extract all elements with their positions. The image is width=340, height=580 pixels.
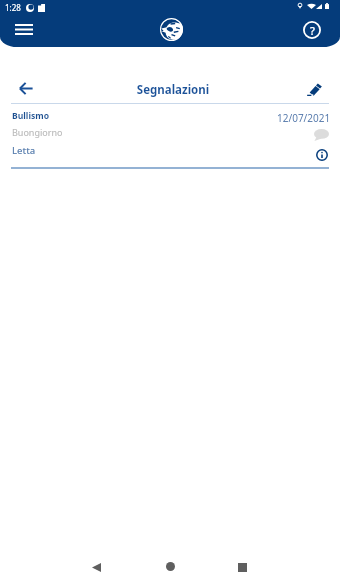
staticText: 1:28 xyxy=(5,2,21,13)
button[interactable]: Help xyxy=(297,16,326,43)
button[interactable]: Edit xyxy=(301,76,328,102)
button[interactable]: Recents xyxy=(220,552,265,580)
staticText: ? xyxy=(310,23,315,38)
button[interactable]: Back xyxy=(12,75,39,101)
staticText: Letta xyxy=(12,144,36,157)
staticText: 12/07/2021 xyxy=(277,111,331,125)
button[interactable]: Bullismo xyxy=(0,104,340,168)
button[interactable]: Home xyxy=(148,552,193,580)
button[interactable]: Info xyxy=(316,149,328,161)
staticText: Bullismo xyxy=(12,110,50,122)
button[interactable]: Back xyxy=(74,552,119,580)
staticText: Segnalazioni xyxy=(3,82,340,98)
button[interactable]: Menu xyxy=(8,16,40,42)
staticText: Buongiorno xyxy=(12,126,63,138)
